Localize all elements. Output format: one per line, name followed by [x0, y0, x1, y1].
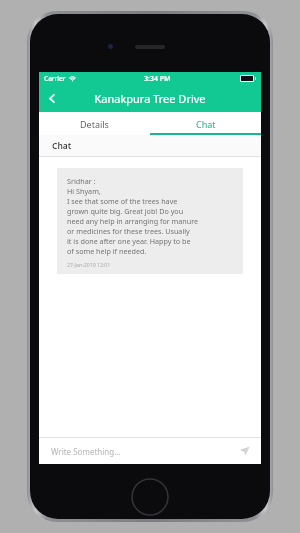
staticText: 27-Jan-2019 12:01 — [67, 261, 111, 268]
button[interactable]: Send — [237, 443, 253, 459]
staticText: Hi Shyam, I see that some of the trees h… — [67, 186, 199, 256]
staticText: Write Something... — [51, 446, 121, 457]
staticText: Kanakpura Tree Drive — [94, 91, 206, 106]
staticText: Chat — [52, 140, 72, 152]
button[interactable]: Chat — [150, 112, 261, 135]
button[interactable]: Write Something... — [39, 438, 261, 464]
button[interactable]: Back — [39, 85, 65, 112]
button[interactable]: Sridhar : — [57, 168, 243, 274]
button[interactable]: Details — [39, 112, 150, 135]
staticText: Sridhar : — [67, 176, 96, 186]
staticText: Chat — [196, 118, 216, 130]
staticText: Details — [80, 118, 109, 130]
staticText: Carrier — [44, 74, 66, 83]
staticText: 3:34 PM — [144, 74, 171, 84]
